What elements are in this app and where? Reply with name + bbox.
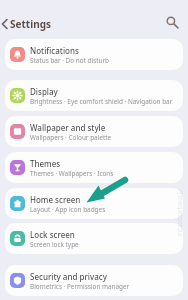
- staticText: Themes · Wallpapers · Icons: [30, 169, 114, 178]
- staticText: Brightness · Eye comfort shield · Naviga…: [30, 97, 173, 106]
- button[interactable]: Notifications: [5, 39, 183, 70]
- staticText: Notifications: [30, 45, 79, 56]
- staticText: Layout · App icon badges: [30, 205, 106, 214]
- button[interactable]: Security and privacy: [5, 265, 183, 296]
- button[interactable]: Back: [0, 13, 14, 35]
- staticText: Home screen: [30, 194, 81, 205]
- button[interactable]: Lock screen: [5, 223, 183, 254]
- button[interactable]: Search: [161, 11, 183, 33]
- staticText: Lock screen: [30, 229, 75, 240]
- button[interactable]: Display: [5, 80, 183, 111]
- button[interactable]: Themes: [5, 152, 183, 183]
- staticText: Screen lock type: [30, 240, 79, 249]
- button[interactable]: Home screen: [5, 188, 183, 219]
- staticText: Biometrics · Permission manager: [30, 282, 130, 291]
- staticText: @thegadgetguide: [177, 190, 185, 238]
- staticText: Display: [30, 86, 58, 97]
- staticText: Themes: [30, 158, 61, 169]
- button[interactable]: Wallpaper and style: [5, 116, 183, 147]
- staticText: Wallpaper and style: [30, 122, 106, 133]
- staticText: Wallpapers · Colour palette: [30, 133, 112, 142]
- staticText: Status bar · Do not disturb: [30, 56, 110, 65]
- staticText: Security and privacy: [30, 271, 107, 282]
- staticText: Settings: [10, 17, 51, 31]
